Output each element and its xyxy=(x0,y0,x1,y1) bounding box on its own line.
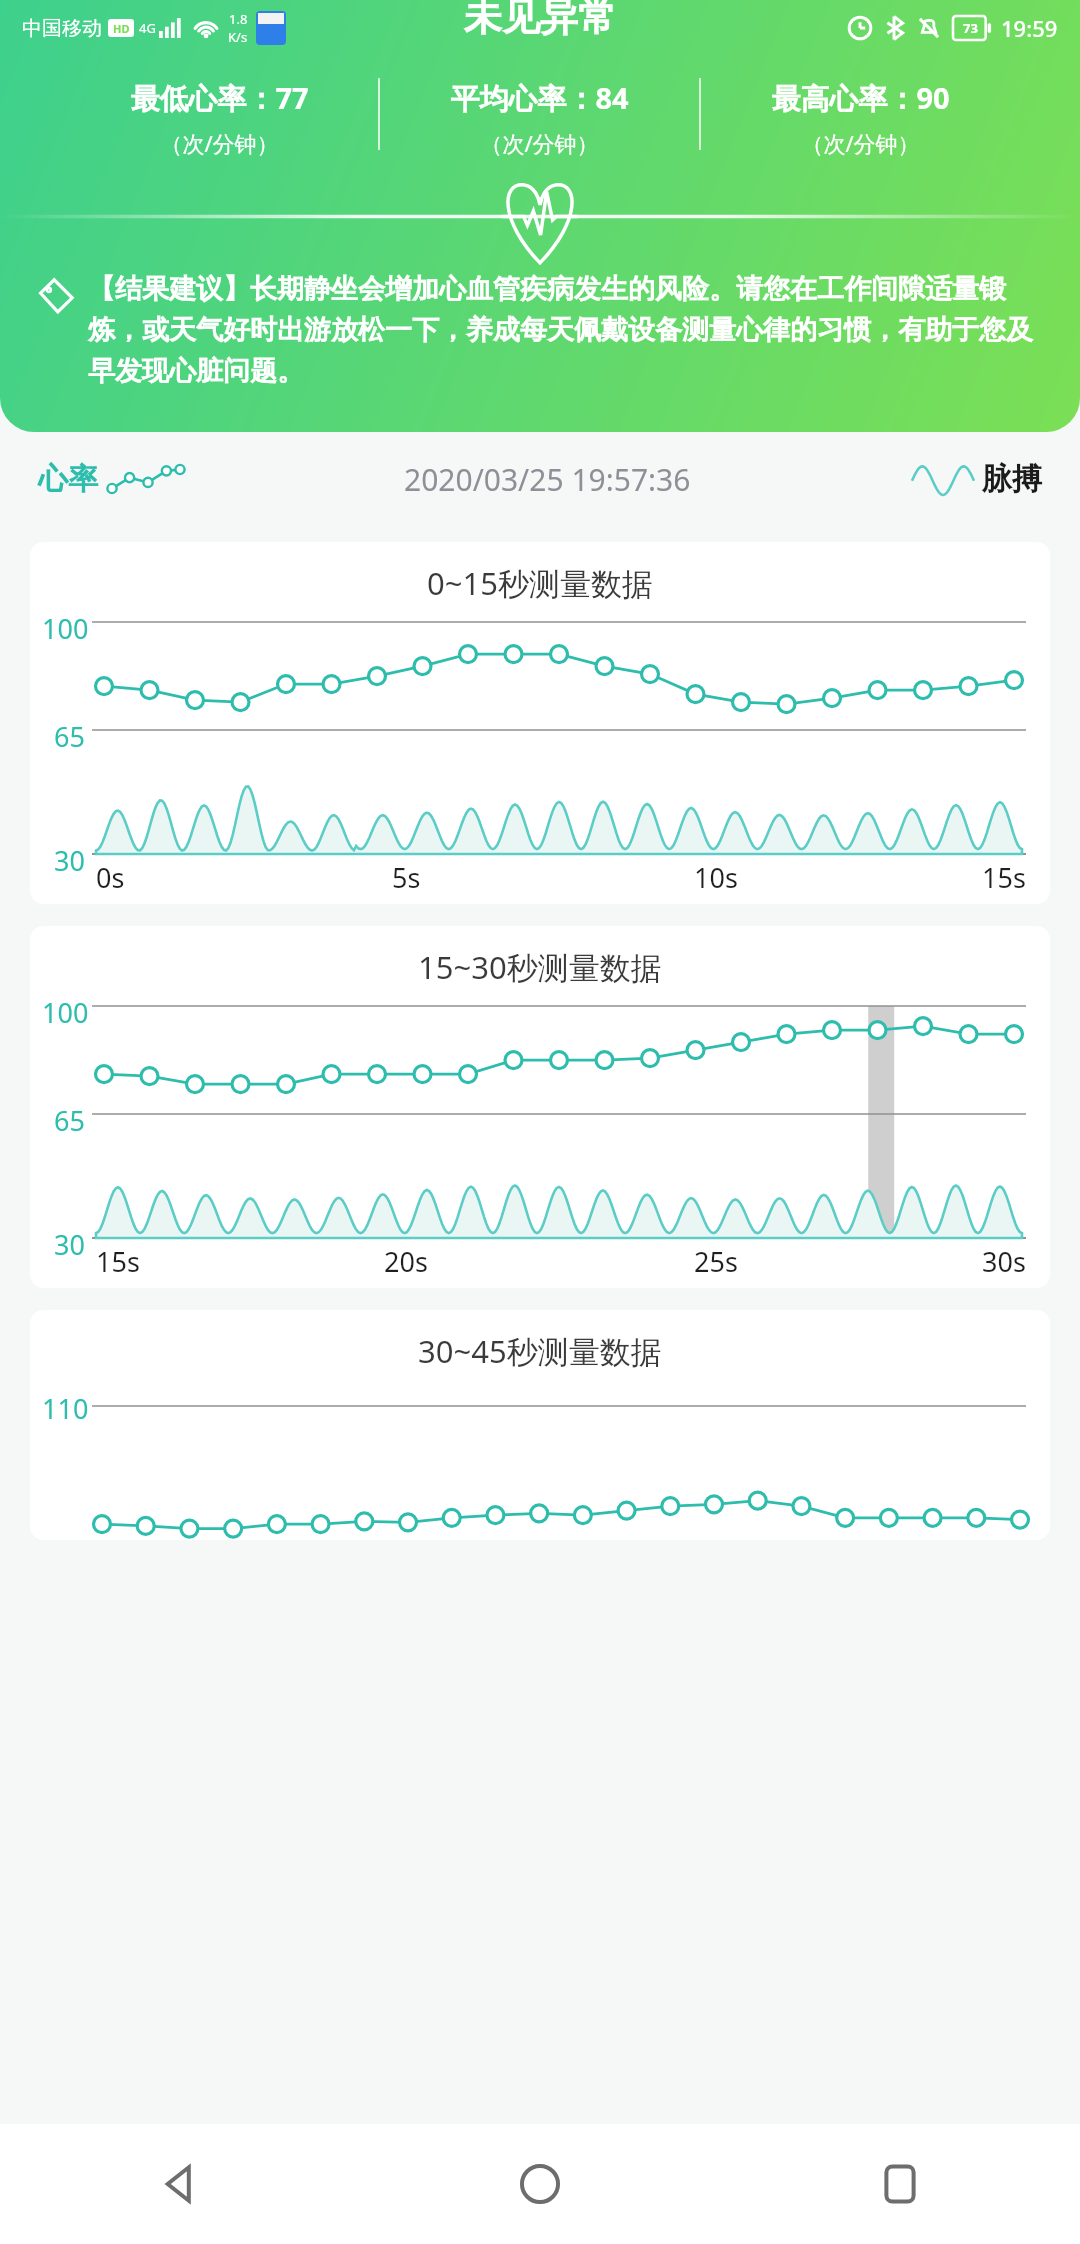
staticText: 100 xyxy=(42,994,89,1031)
staticText: （次/分钟） xyxy=(801,128,920,158)
staticText: 2020/03/25 19:57:36 xyxy=(404,459,691,500)
staticText: 30 xyxy=(54,1226,85,1263)
staticText: 100 xyxy=(42,610,89,647)
staticText: 25s xyxy=(694,1243,738,1280)
staticText: （次/分钟） xyxy=(160,128,279,158)
staticText: 19:59 xyxy=(1001,13,1058,43)
staticText: 脉搏 xyxy=(982,460,1042,498)
button[interactable]: Home xyxy=(360,2124,720,2244)
staticText: 65 xyxy=(54,1102,85,1139)
staticText: K/s xyxy=(228,28,248,46)
staticText: 心率 xyxy=(38,460,98,498)
staticText: 4G xyxy=(139,19,156,37)
staticText: 15~30秒测量数据 xyxy=(418,946,662,988)
staticText: 0~15秒测量数据 xyxy=(427,562,653,604)
staticText: 5s xyxy=(392,859,421,896)
staticText: 【结果建议】长期静坐会增加心血管疾病发生的风险。请您在工作间隙适量锻炼，或天气好… xyxy=(88,272,1050,388)
button[interactable]: 0~15秒测量数据 xyxy=(30,542,1050,904)
button[interactable]: 脉搏 xyxy=(908,456,1046,502)
staticText: 73 xyxy=(963,19,978,37)
staticText: 未见异常 xyxy=(464,0,616,41)
staticText: 最低心率：77 xyxy=(130,78,309,118)
button[interactable]: Recent apps xyxy=(720,2124,1080,2244)
staticText: 65 xyxy=(54,718,85,755)
button[interactable]: Back xyxy=(0,2124,360,2244)
staticText: 30s xyxy=(982,1243,1026,1280)
staticText: 10s xyxy=(694,859,738,896)
staticText: （次/分钟） xyxy=(480,128,599,158)
staticText: 30~45秒测量数据 xyxy=(418,1330,662,1372)
button[interactable]: 30~45秒测量数据 xyxy=(30,1310,1050,1540)
staticText: 中国移动 xyxy=(22,16,102,41)
staticText: 30 xyxy=(54,842,85,879)
staticText: HD xyxy=(113,21,130,36)
staticText: 平均心率：84 xyxy=(450,78,629,118)
staticText: 0s xyxy=(96,859,125,896)
staticText: 110 xyxy=(42,1390,89,1427)
button[interactable]: 15~30秒测量数据 xyxy=(30,926,1050,1288)
button[interactable]: 心率 xyxy=(34,456,188,502)
staticText: 15s xyxy=(982,859,1026,896)
staticText: 最高心率：90 xyxy=(771,78,950,118)
staticText: 20s xyxy=(384,1243,428,1280)
staticText: 1.8 xyxy=(229,10,248,28)
staticText: 15s xyxy=(96,1243,140,1280)
